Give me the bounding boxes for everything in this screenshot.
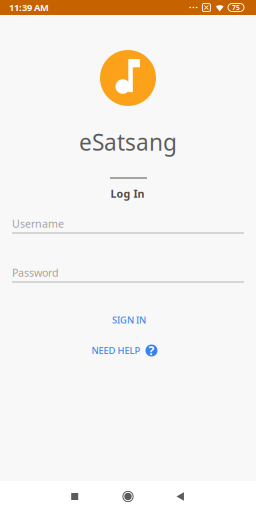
staticText: ?	[148, 342, 154, 358]
staticText: 11:39 AM	[9, 1, 49, 14]
staticText: SIGN IN	[112, 314, 146, 326]
button[interactable]: Back	[154, 481, 206, 512]
staticText: Username	[12, 216, 64, 231]
button[interactable]: Password	[12, 265, 244, 282]
button[interactable]: Username	[12, 216, 244, 233]
staticText: Password	[12, 265, 59, 280]
button[interactable]: NEED HELP	[81, 338, 167, 363]
staticText: 75	[232, 3, 240, 12]
staticText: Log In	[110, 186, 144, 201]
button[interactable]: Home	[102, 481, 154, 512]
staticText: eSatsang	[79, 127, 177, 157]
button[interactable]: Recent apps	[49, 481, 101, 512]
staticText: NEED HELP	[91, 344, 140, 357]
button[interactable]: SIGN IN	[98, 307, 160, 333]
